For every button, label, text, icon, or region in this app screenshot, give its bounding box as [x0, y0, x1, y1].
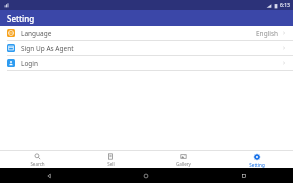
button[interactable]: Recent apps — [195, 168, 293, 183]
button[interactable]: Setting — [220, 151, 293, 168]
staticText: 6:13 — [280, 2, 290, 9]
staticText: Login — [21, 59, 282, 68]
button[interactable]: Sign Up As Agent — [0, 41, 293, 55]
button[interactable]: Sell — [74, 151, 147, 168]
button[interactable]: Back — [0, 168, 97, 183]
button[interactable]: Gallery — [147, 151, 220, 168]
staticText: Setting — [249, 162, 265, 168]
button[interactable]: Login — [0, 56, 293, 70]
staticText: Sell — [107, 161, 115, 167]
staticText: Language — [21, 29, 256, 38]
staticText: Sign Up As Agent — [21, 44, 282, 53]
staticText: Gallery — [176, 161, 191, 167]
button[interactable]: Search — [0, 151, 74, 168]
staticText: English — [256, 29, 279, 38]
button[interactable]: Home — [97, 168, 195, 183]
staticText: Search — [30, 161, 45, 167]
staticText: Setting — [7, 13, 35, 24]
button[interactable]: Language — [0, 26, 293, 40]
